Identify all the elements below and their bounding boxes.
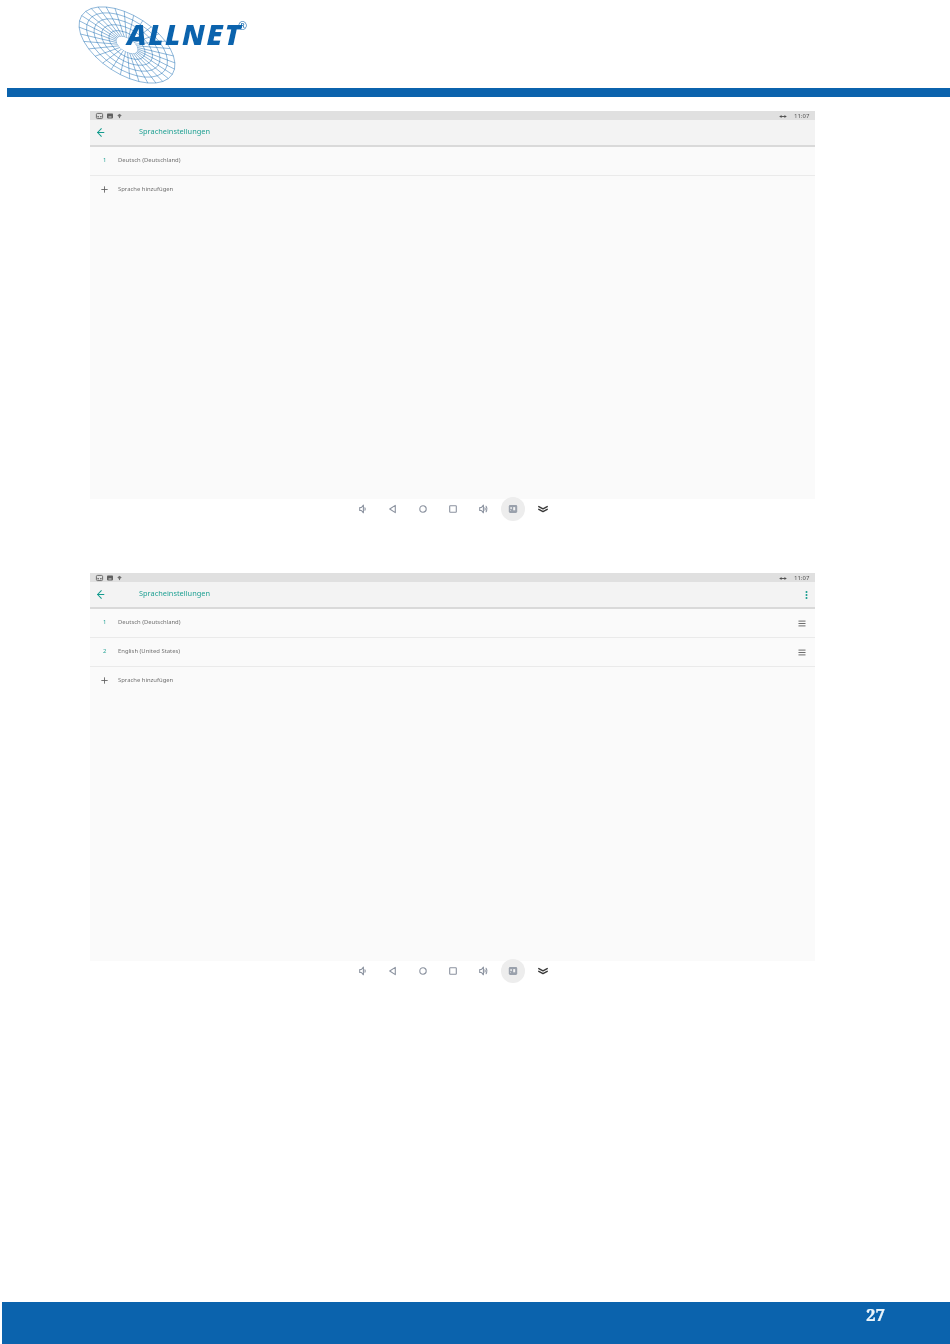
button[interactable]: Verschieben (794, 644, 810, 660)
button[interactable]: Zurück (378, 956, 408, 985)
button[interactable]: Mehr Optionen (798, 587, 814, 603)
button[interactable]: Startseite (408, 494, 438, 523)
staticText: 11:07 (794, 112, 810, 120)
button[interactable]: Zurück (91, 585, 109, 603)
button[interactable]: Lautstärke erhöhen (468, 494, 498, 523)
button[interactable]: Lautstärke verringern (348, 494, 378, 523)
staticText: Spracheinstellungen (139, 126, 211, 136)
button[interactable]: 1 (90, 147, 815, 175)
staticText: 1 (103, 156, 107, 164)
button[interactable]: Sprache hinzufügen (90, 667, 815, 695)
staticText: 1 (103, 618, 107, 626)
staticText: Sprache hinzufügen (118, 676, 174, 684)
button[interactable]: Lautstärke verringern (348, 956, 378, 985)
button[interactable]: 1 (90, 609, 815, 637)
staticText: 11:07 (794, 574, 810, 582)
staticText: 27 (866, 1303, 886, 1326)
button[interactable]: Screenshot (498, 956, 528, 985)
button[interactable]: Startseite (408, 956, 438, 985)
button[interactable]: Einklappen (528, 494, 558, 523)
staticText: ® (238, 18, 248, 33)
button[interactable]: Lautstärke erhöhen (468, 956, 498, 985)
button[interactable]: Übersicht (438, 956, 468, 985)
button[interactable]: Einklappen (528, 956, 558, 985)
button[interactable]: Übersicht (438, 494, 468, 523)
staticText: 2 (103, 647, 107, 655)
button[interactable]: 2 (90, 638, 815, 666)
button[interactable]: Zurück (91, 123, 109, 141)
staticText: Deutsch (Deutschland) (118, 156, 181, 164)
staticText: Spracheinstellungen (139, 588, 211, 598)
button[interactable]: Zurück (378, 494, 408, 523)
staticText: Deutsch (Deutschland) (118, 618, 181, 626)
staticText: ALLNET (127, 14, 242, 53)
staticText: Sprache hinzufügen (118, 185, 174, 193)
button[interactable]: Verschieben (794, 615, 810, 631)
staticText: English (United States) (118, 647, 181, 655)
button[interactable]: Screenshot (498, 494, 528, 523)
button[interactable]: Sprache hinzufügen (90, 176, 815, 204)
